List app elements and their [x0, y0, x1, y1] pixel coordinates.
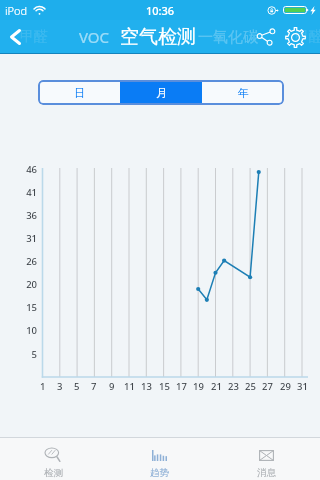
staticText: 25 — [245, 380, 256, 393]
staticText: 17 — [176, 380, 187, 393]
button[interactable]: Back — [4, 20, 26, 54]
staticText: 27 — [262, 380, 273, 393]
staticText: 46 — [26, 163, 37, 176]
staticText: 日 — [74, 86, 85, 100]
staticText: 7 — [91, 380, 97, 393]
button[interactable]: 日 — [38, 80, 120, 105]
staticText: 5 — [31, 348, 37, 361]
staticText: 9 — [109, 380, 115, 393]
staticText: 36 — [26, 209, 37, 222]
staticText: 趋势 — [150, 467, 169, 479]
staticText: 19 — [193, 380, 204, 393]
staticText: 15 — [159, 380, 170, 393]
button[interactable]: 检测 — [0, 438, 106, 480]
staticText: VOC — [79, 27, 110, 47]
button[interactable]: Share — [252, 20, 280, 54]
staticText: 月 — [156, 86, 167, 100]
staticText: 3 — [57, 380, 63, 393]
staticText: 20 — [26, 278, 37, 291]
staticText: 10 — [26, 324, 37, 337]
staticText: 29 — [280, 380, 291, 393]
staticText: 年 — [238, 86, 249, 100]
button[interactable]: 月 — [120, 80, 202, 105]
staticText: 1 — [40, 380, 46, 393]
staticText: iPod — [5, 3, 28, 18]
staticText: 甲醛 — [295, 28, 320, 46]
staticText: 检测 — [44, 467, 63, 479]
staticText: 消息 — [257, 467, 276, 479]
staticText: 甲醛 — [20, 28, 48, 46]
staticText: 11 — [124, 380, 135, 393]
staticText: 15 — [26, 301, 37, 314]
staticText: 31 — [26, 232, 37, 245]
staticText: 41 — [26, 186, 37, 199]
staticText: 23 — [228, 380, 239, 393]
button[interactable]: 年 — [202, 80, 284, 105]
staticText: 21 — [211, 380, 222, 393]
staticText: 31 — [297, 380, 308, 393]
button[interactable]: 消息 — [213, 438, 320, 480]
staticText: 一氧化碳 — [198, 28, 258, 47]
staticText: 26 — [26, 255, 37, 268]
staticText: 10:36 — [146, 3, 175, 18]
button[interactable]: 趋势 — [106, 438, 213, 480]
staticText: 13 — [141, 380, 152, 393]
staticText: 空气检测 — [120, 25, 196, 49]
button[interactable]: Settings — [281, 20, 309, 54]
staticText: 5 — [74, 380, 80, 393]
